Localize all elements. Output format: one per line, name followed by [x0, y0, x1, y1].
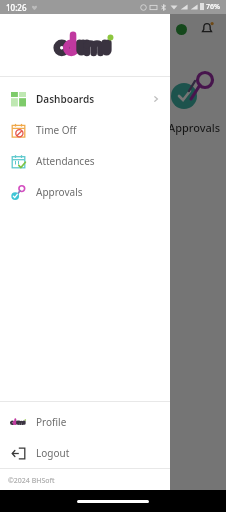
- staticText: Logout: [36, 446, 70, 460]
- button[interactable]: Logout: [0, 437, 170, 468]
- staticText: Attendances: [36, 154, 95, 168]
- staticText: Approvals: [168, 120, 221, 135]
- button[interactable]: Attendances: [0, 145, 170, 176]
- button[interactable]: Approvals: [0, 176, 170, 207]
- staticText: Approvals: [36, 185, 83, 199]
- button[interactable]: Dashboards: [0, 83, 170, 114]
- staticText: Time Off: [36, 123, 77, 137]
- staticText: Profile: [36, 415, 67, 429]
- staticText: 10:26: [6, 2, 27, 13]
- button[interactable]: Time Off: [0, 114, 170, 145]
- staticText: ©2024 BHSoft: [8, 476, 55, 486]
- staticText: 76%: [206, 2, 220, 12]
- staticText: Dashboards: [36, 92, 95, 106]
- button[interactable]: Notifications: [198, 20, 216, 38]
- button[interactable]: Profile: [0, 406, 170, 437]
